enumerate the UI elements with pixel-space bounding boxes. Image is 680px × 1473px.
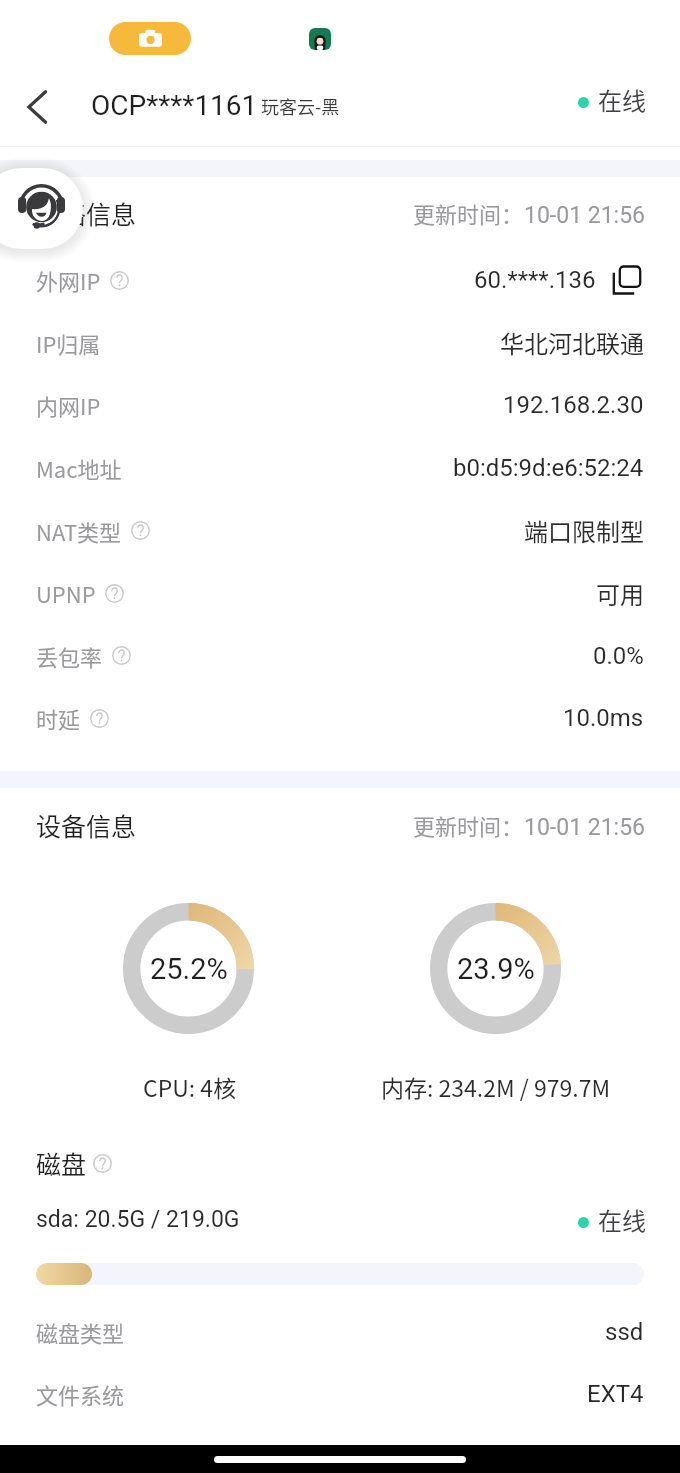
button[interactable]: 外网IP xyxy=(0,249,680,311)
button[interactable]: 在线 xyxy=(576,82,646,117)
button[interactable]: UPNP xyxy=(0,562,680,624)
staticText: 60.****.136 xyxy=(474,266,596,294)
button[interactable]: IP归属 xyxy=(0,311,680,374)
button[interactable]: 在线 xyxy=(576,1202,646,1237)
staticText: 10-01 21:56 xyxy=(524,202,646,229)
staticText: CPU: 4核 xyxy=(143,1070,237,1103)
staticText: 25.2% xyxy=(150,952,228,986)
staticText: 在线 xyxy=(598,1202,646,1237)
staticText: 内网IP xyxy=(36,389,101,421)
staticText: Mac地址 xyxy=(36,452,122,484)
staticText: 端口限制型 xyxy=(524,513,644,548)
button[interactable]: 丢包率 xyxy=(0,624,680,687)
staticText: 玩客云-黑 xyxy=(261,93,340,119)
staticText: 文件系统 xyxy=(36,1378,125,1410)
staticText: IP归属 xyxy=(36,327,101,359)
button[interactable]: 时延 xyxy=(0,687,680,749)
staticText: 华北河北联通 xyxy=(500,325,644,360)
staticText: b0:d5:9d:e6:52:24 xyxy=(453,454,644,482)
button[interactable]: 磁盘类型 xyxy=(0,1301,680,1363)
staticText: 磁盘 xyxy=(36,1145,87,1181)
button[interactable]: Camera xyxy=(109,22,191,55)
staticText: EXT4 xyxy=(587,1380,644,1408)
button[interactable]: Customer service xyxy=(0,168,83,249)
staticText: 内存: 234.2M / 979.7M xyxy=(381,1070,611,1103)
staticText: OCP****1161 xyxy=(91,89,258,122)
staticText: 192.168.2.30 xyxy=(503,391,644,419)
staticText: 在线 xyxy=(598,82,646,117)
staticText: 更新时间： xyxy=(413,809,524,841)
button[interactable]: Back xyxy=(0,68,76,146)
staticText: ssd xyxy=(605,1318,644,1346)
staticText: 10.0ms xyxy=(563,704,644,732)
staticText: 可用 xyxy=(596,576,644,611)
button[interactable]: 内网IP xyxy=(0,374,680,436)
staticText: 磁盘类型 xyxy=(36,1316,125,1348)
staticText: 网络信息 xyxy=(36,195,137,231)
staticText: UPNP xyxy=(36,577,96,609)
staticText: 时延 xyxy=(36,702,81,734)
button[interactable]: NAT类型 xyxy=(0,499,680,562)
button[interactable]: Copy xyxy=(610,263,644,297)
staticText: 0.0% xyxy=(593,642,644,670)
staticText: 10-01 21:56 xyxy=(524,814,646,841)
staticText: sda: 20.5G / 219.0G xyxy=(36,1206,240,1233)
staticText: 外网IP xyxy=(36,264,101,296)
staticText: 更新时间： xyxy=(413,197,524,229)
button[interactable]: 文件系统 xyxy=(0,1363,680,1424)
staticText: 设备信息 xyxy=(36,807,137,843)
staticText: NAT类型 xyxy=(36,515,122,547)
button[interactable]: Mac地址 xyxy=(0,436,680,499)
staticText: 23.9% xyxy=(457,952,535,986)
staticText: 丢包率 xyxy=(36,640,103,672)
button[interactable]: Profile xyxy=(309,28,331,50)
